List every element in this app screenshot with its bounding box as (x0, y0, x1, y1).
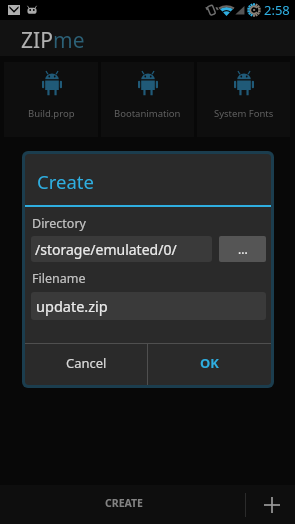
staticText: Create (37, 169, 94, 194)
staticText: update.zip (36, 296, 108, 316)
staticText: CREATE (105, 496, 143, 510)
button[interactable]: OK (148, 344, 271, 385)
staticText: s (269, 272, 275, 287)
button[interactable]: update.zip (31, 292, 266, 320)
staticText: me (53, 26, 85, 55)
button[interactable]: Add (245, 485, 295, 524)
button[interactable]: CREATE (94, 485, 154, 521)
staticText: 2:58 (264, 1, 290, 19)
staticText: OK (200, 354, 219, 372)
staticText: System Fonts (214, 107, 274, 120)
button[interactable]: ... (219, 236, 266, 262)
staticText: /storage/emulated/0/ (35, 240, 177, 259)
button[interactable]: /storage/emulated/0/ (31, 236, 212, 262)
button[interactable]: Bootanimation (101, 62, 194, 137)
staticText: Filename (32, 270, 86, 287)
staticText: Directory (32, 215, 86, 232)
staticText: Cancel (66, 354, 107, 372)
button[interactable]: Cancel (25, 344, 147, 385)
staticText: ... (238, 241, 248, 257)
staticText: Build.prop (28, 107, 75, 120)
button[interactable]: System Fonts (197, 62, 290, 137)
button[interactable]: Build.prop (4, 62, 98, 137)
staticText: ZIP (21, 26, 53, 55)
staticText: Bootanimation (114, 107, 181, 120)
